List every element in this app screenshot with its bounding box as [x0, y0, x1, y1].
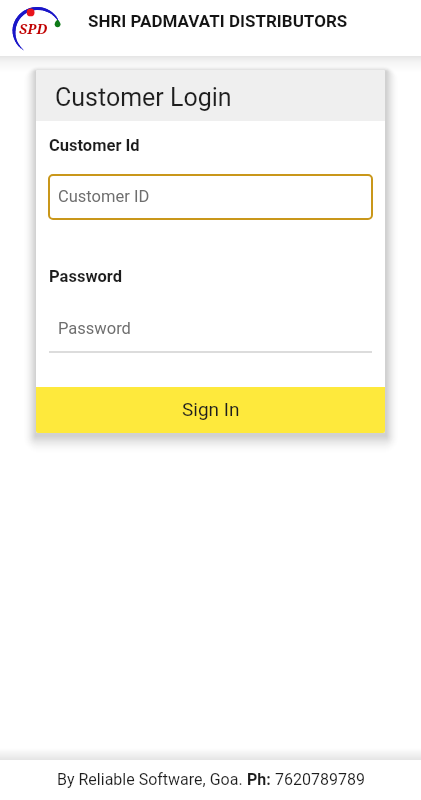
staticText: SHRI PADMAVATI DISTRIBUTORS [88, 11, 348, 31]
staticText: 7620789789 [271, 770, 365, 789]
button[interactable]: Customer ID [48, 174, 373, 220]
staticText: By Reliable Software, Goa. [57, 770, 247, 789]
button[interactable]: Password [49, 307, 372, 353]
staticText: Customer Id [49, 136, 140, 155]
staticText: Ph: [247, 770, 271, 789]
staticText: SPD [19, 19, 48, 38]
staticText: Customer ID [58, 187, 150, 206]
staticText: Password [49, 267, 123, 286]
staticText: Sign In [182, 398, 240, 420]
staticText: Customer Login [55, 83, 232, 112]
other: Shri Padmavati Distributors logo [3, 1, 67, 55]
button[interactable]: Sign In [36, 387, 385, 433]
staticText: Password [58, 319, 131, 338]
